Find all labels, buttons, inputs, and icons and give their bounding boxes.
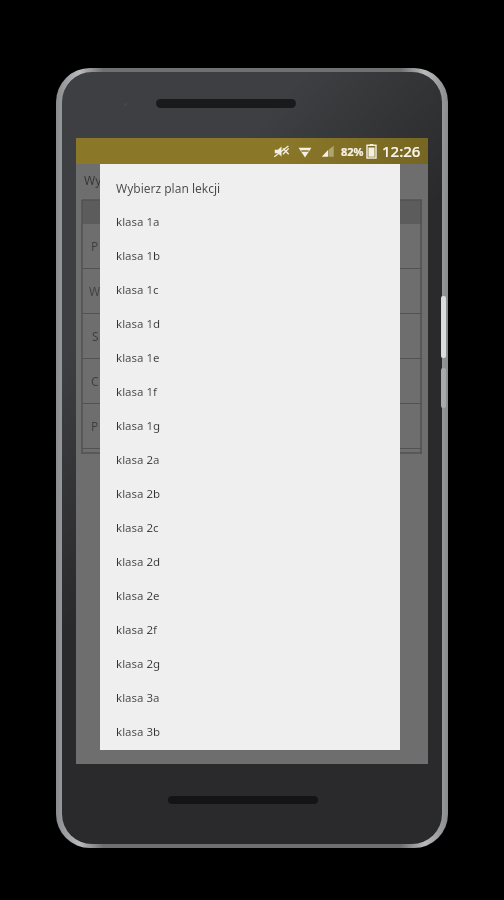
- button[interactable]: klasa 2b: [100, 477, 400, 511]
- button[interactable]: klasa 2c: [100, 511, 400, 545]
- button[interactable]: klasa 2d: [100, 545, 400, 579]
- staticText: Wybierz plan lekcji: [84, 172, 189, 188]
- staticText: klasa 1c: [116, 282, 159, 298]
- button[interactable]: klasa 1g: [100, 409, 400, 443]
- button[interactable]: klasa 2a: [100, 443, 400, 477]
- staticText: S: [92, 328, 99, 344]
- staticText: C: [91, 373, 99, 389]
- staticText: 12:26: [382, 141, 421, 161]
- button[interactable]: klasa 3a: [100, 681, 400, 715]
- button[interactable]: klasa 1c: [100, 273, 400, 307]
- button[interactable]: klasa 1f: [100, 375, 400, 409]
- staticText: klasa 1f: [116, 384, 158, 400]
- staticText: klasa 2d: [116, 554, 161, 570]
- staticText: klasa 1d: [116, 316, 161, 332]
- staticText: 82%: [341, 144, 364, 159]
- staticText: klasa 3b: [116, 724, 161, 740]
- button[interactable]: klasa 2e: [100, 579, 400, 613]
- staticText: klasa 1b: [116, 248, 161, 264]
- button[interactable]: klasa 3b: [100, 715, 400, 749]
- button[interactable]: klasa 1e: [100, 341, 400, 375]
- staticText: Wybierz plan lekcji: [116, 180, 221, 196]
- staticText: klasa 2a: [116, 452, 160, 468]
- button[interactable]: klasa 1a: [100, 205, 400, 239]
- button[interactable]: klasa 1d: [100, 307, 400, 341]
- staticText: klasa 2f: [116, 622, 158, 638]
- staticText: P: [91, 418, 99, 434]
- staticText: klasa 1g: [116, 418, 161, 434]
- staticText: W: [89, 283, 101, 299]
- button[interactable]: klasa 1b: [100, 239, 400, 273]
- button[interactable]: klasa 2g: [100, 647, 400, 681]
- staticText: klasa 2c: [116, 520, 159, 536]
- button[interactable]: klasa 2f: [100, 613, 400, 647]
- staticText: klasa 3a: [116, 690, 160, 706]
- staticText: klasa 2e: [116, 588, 160, 604]
- staticText: klasa 1e: [116, 350, 160, 366]
- staticText: P: [91, 238, 99, 254]
- staticText: klasa 2g: [116, 656, 161, 672]
- staticText: klasa 1a: [116, 214, 160, 230]
- staticText: klasa 2b: [116, 486, 161, 502]
